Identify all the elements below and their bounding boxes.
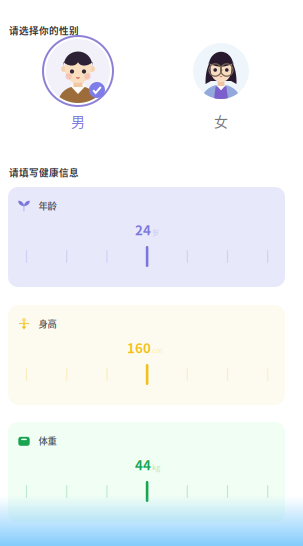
staticText: 女 — [214, 111, 228, 131]
staticText: cm — [152, 345, 163, 355]
staticText: 年龄 — [38, 199, 56, 212]
staticText: 岁 — [152, 227, 159, 237]
staticText: 24 — [135, 220, 151, 239]
staticText: 160 — [127, 338, 151, 357]
staticText: 身高 — [38, 317, 56, 330]
staticText: kg — [152, 462, 160, 472]
button[interactable]: 女 — [166, 33, 276, 137]
staticText: 体重 — [38, 434, 56, 447]
button[interactable]: 男 — [23, 33, 133, 137]
staticText: 男 — [71, 111, 85, 131]
staticText: 请填写健康信息 — [9, 165, 79, 179]
staticText: 请选择你的性别 — [9, 23, 79, 37]
staticText: 44 — [135, 455, 151, 474]
